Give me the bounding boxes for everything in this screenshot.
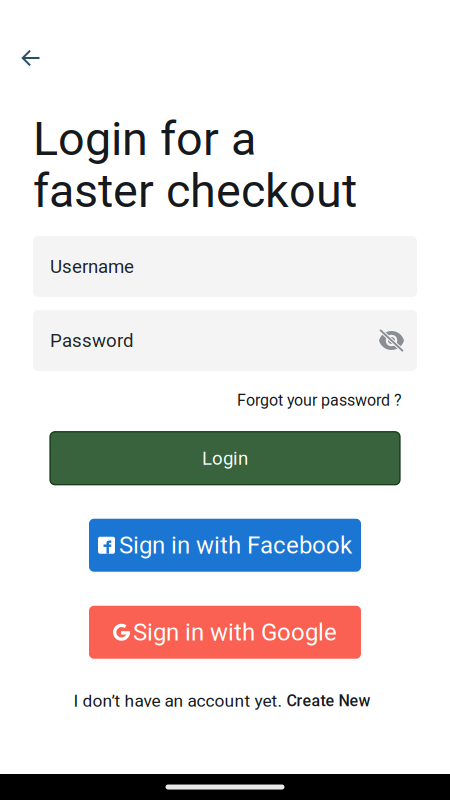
staticText: faster checkout — [33, 164, 357, 218]
staticText: Password — [50, 330, 134, 351]
button[interactable]: Sign in with Facebook — [89, 519, 361, 572]
button[interactable]: Login — [50, 432, 400, 485]
staticText: Create New — [286, 691, 370, 710]
button[interactable]: Sign in with Google — [89, 606, 361, 659]
staticText: Sign in with Google — [133, 618, 337, 646]
staticText: Login for a — [33, 112, 256, 166]
button[interactable]: Forgot your password ? — [237, 391, 402, 410]
button[interactable]: Back — [11, 38, 51, 78]
staticText: Forgot your password ? — [237, 391, 402, 410]
staticText: I don’t have an account yet. — [73, 691, 286, 711]
staticText: Username — [50, 256, 134, 277]
staticText: Sign in with Facebook — [119, 531, 352, 559]
button[interactable]: Create New — [286, 691, 370, 710]
staticText: Login — [202, 447, 248, 469]
